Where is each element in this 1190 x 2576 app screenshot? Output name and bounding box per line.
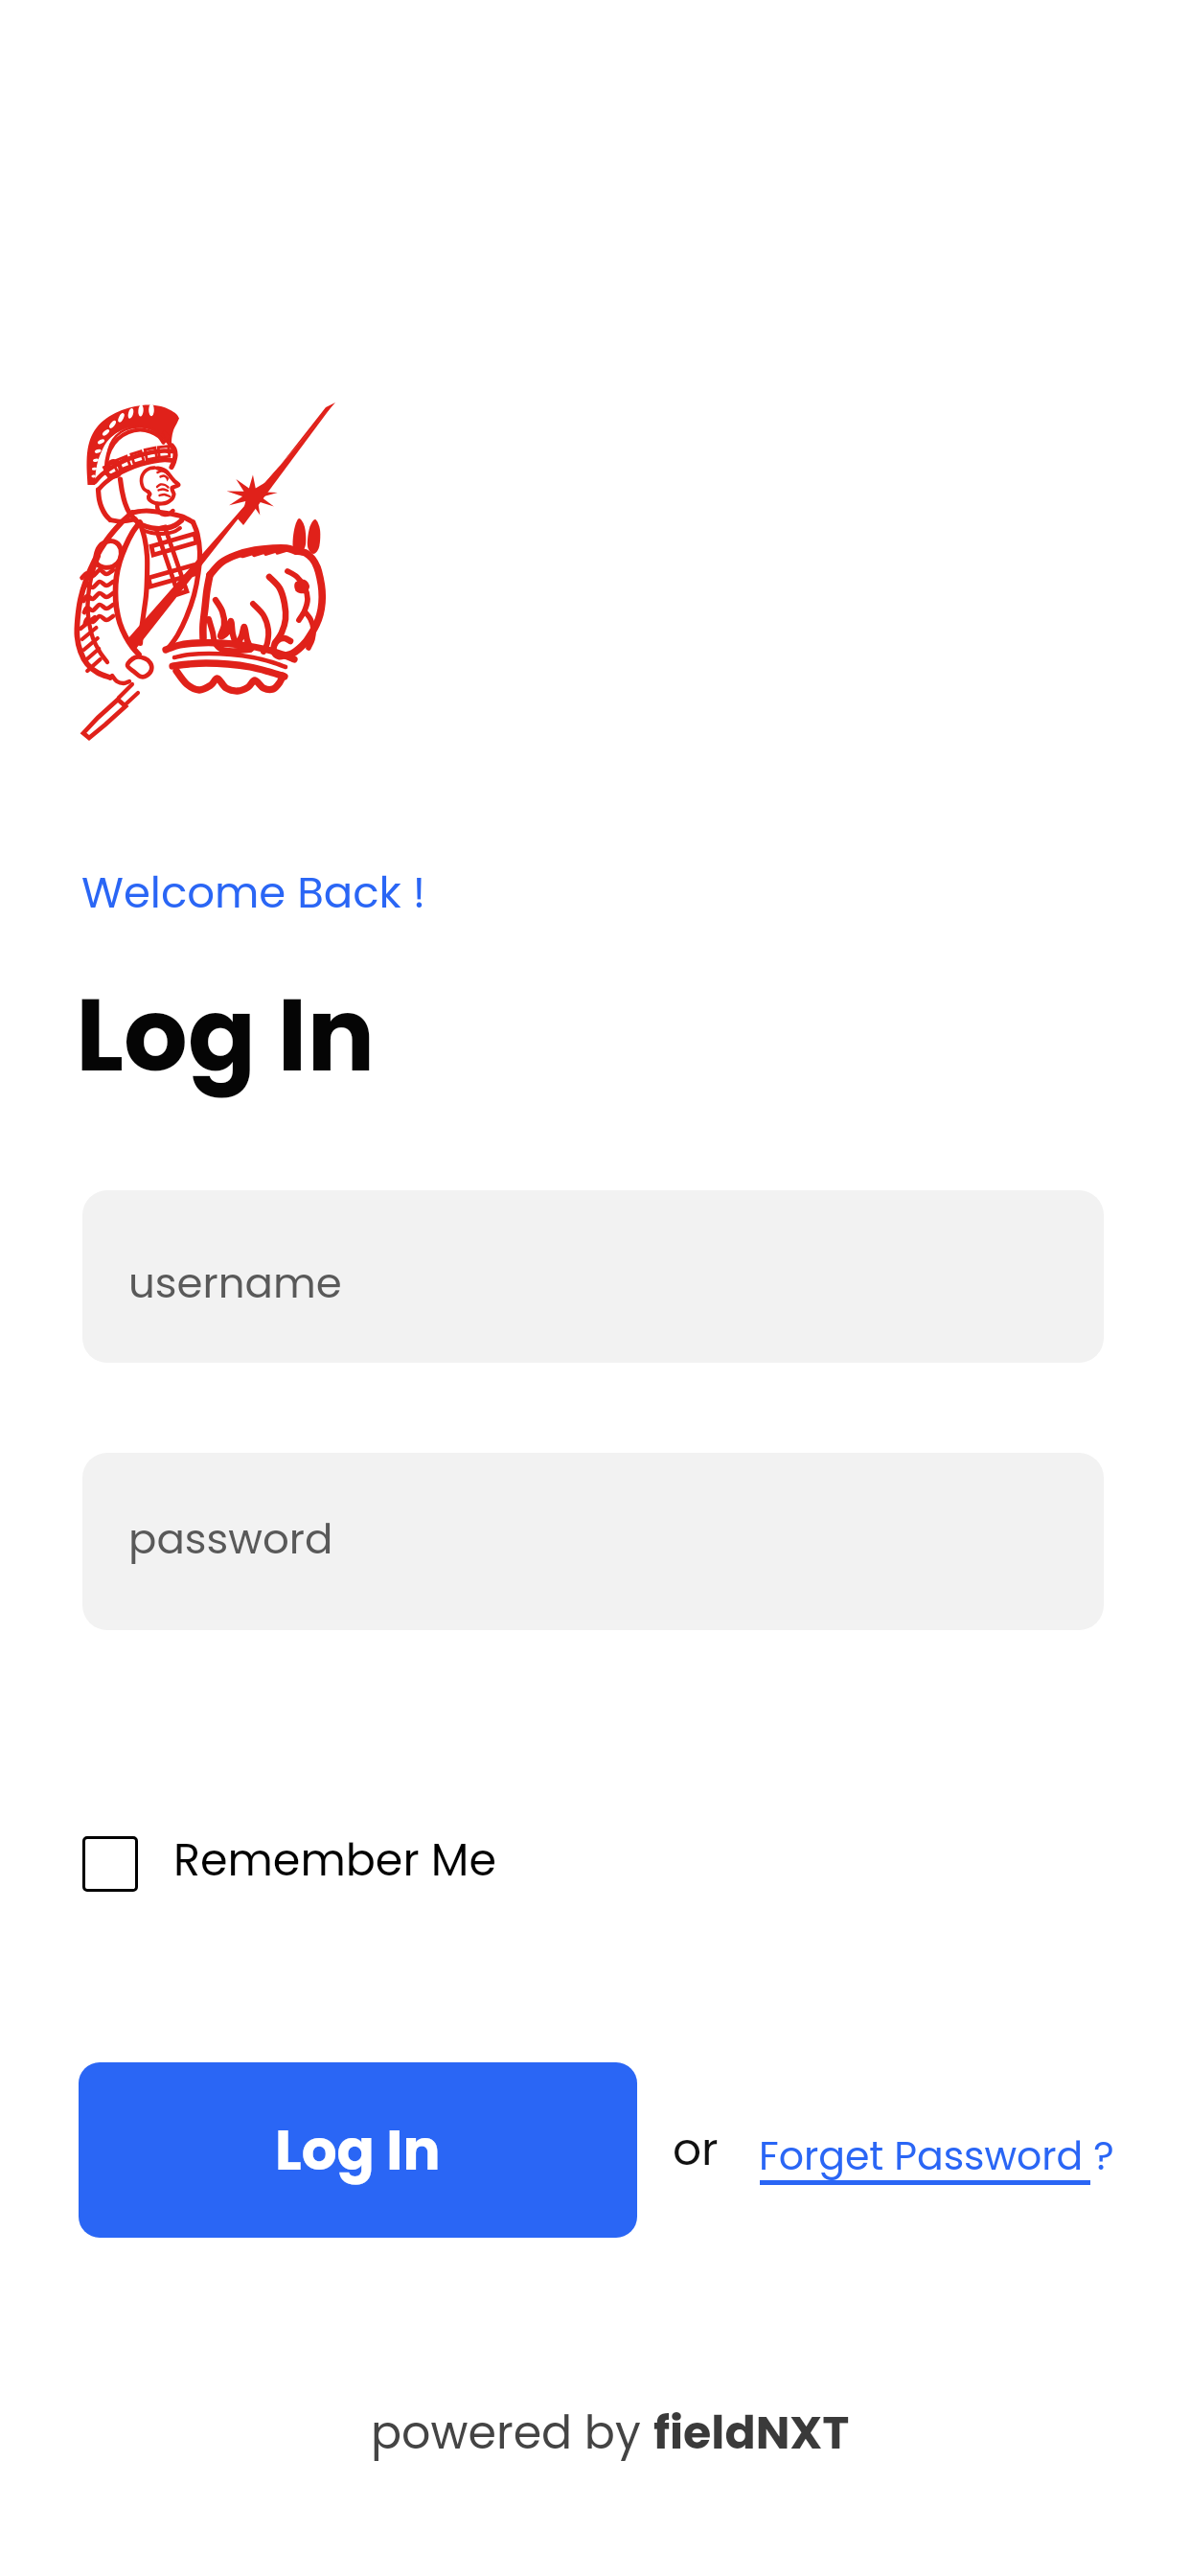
staticText: username [128, 1253, 342, 1312]
button[interactable]: Forget Password ? [759, 2128, 1114, 2183]
staticText: fieldNXT [653, 2401, 850, 2464]
button[interactable]: Remember Me checkbox [82, 1827, 496, 1901]
staticText: powered by [371, 2401, 653, 2464]
button[interactable]: password [82, 1453, 1104, 1630]
other: Remember Me checkbox [82, 1836, 138, 1892]
staticText: or [673, 2118, 719, 2181]
button[interactable]: username [82, 1190, 1104, 1363]
staticText: Welcome Back ! [81, 862, 426, 923]
staticText: Remember Me [173, 1829, 496, 1891]
staticText: Forget Password ? [759, 2128, 1114, 2183]
staticText: Log In [275, 2111, 441, 2189]
staticText: password [128, 1509, 333, 1568]
staticText: Log In [76, 965, 376, 1106]
button[interactable]: Log In [79, 2062, 637, 2238]
other: Knight logo [75, 402, 335, 740]
